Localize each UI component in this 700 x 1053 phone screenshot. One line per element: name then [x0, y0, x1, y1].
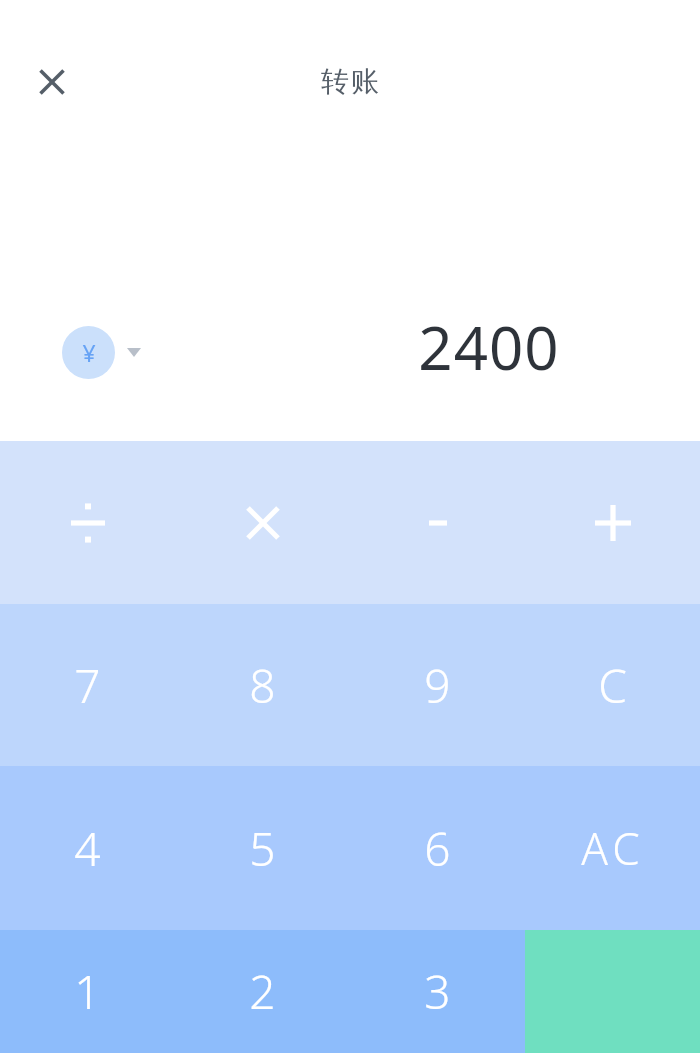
staticText: C — [598, 654, 627, 717]
staticText: 9 — [424, 654, 451, 717]
staticText: ¥ — [82, 337, 96, 368]
button[interactable]: C — [525, 604, 700, 766]
button[interactable]: Divide — [0, 441, 175, 604]
staticText: 2400 — [418, 306, 560, 388]
button[interactable]: ¥ — [52, 320, 151, 385]
button[interactable]: 2 — [175, 930, 350, 1053]
staticText: 8 — [249, 654, 276, 717]
button[interactable]: Close — [20, 50, 84, 114]
button[interactable]: Plus — [525, 441, 700, 604]
staticText: 1 — [74, 960, 101, 1023]
button[interactable]: Multiply — [175, 441, 350, 604]
button[interactable]: 7 — [0, 604, 175, 766]
staticText: 5 — [249, 817, 276, 880]
staticText: 2 — [249, 960, 276, 1023]
button[interactable]: 4 — [0, 766, 175, 930]
staticText: 7 — [74, 654, 101, 717]
button[interactable]: 6 — [350, 766, 525, 930]
staticText: 转账 — [320, 64, 380, 99]
staticText: 3 — [424, 960, 451, 1023]
staticText: 6 — [424, 817, 451, 880]
button[interactable]: AC — [525, 766, 700, 930]
button[interactable]: 9 — [350, 604, 525, 766]
button[interactable]: 3 — [350, 930, 525, 1053]
staticText: 4 — [74, 817, 101, 880]
button[interactable]: Backspace — [584, 475, 662, 533]
button[interactable]: 5 — [175, 766, 350, 930]
button[interactable]: 8 — [175, 604, 350, 766]
staticText: AC — [581, 818, 645, 878]
button[interactable]: 1 — [0, 930, 175, 1053]
